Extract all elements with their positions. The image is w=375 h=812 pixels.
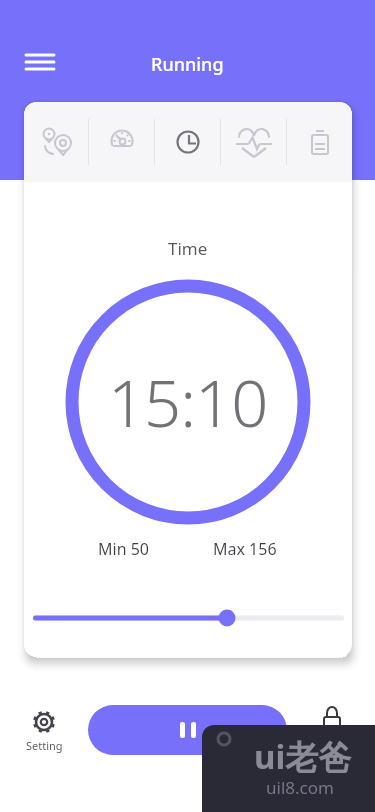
staticText: uil8.com (266, 776, 334, 799)
staticText: Max 156 (213, 538, 277, 560)
button[interactable] (319, 703, 345, 733)
button[interactable] (89, 102, 154, 182)
staticText: 15:10 (108, 358, 268, 447)
button[interactable] (155, 102, 220, 182)
button[interactable]: Setting (20, 705, 68, 761)
button[interactable] (24, 102, 88, 182)
button[interactable] (88, 705, 287, 755)
staticText: Setting (26, 738, 63, 753)
button[interactable] (287, 102, 352, 182)
staticText: Time (168, 237, 208, 260)
button[interactable] (221, 102, 286, 182)
staticText: Min 50 (98, 538, 149, 560)
staticText: Running (151, 52, 224, 77)
button[interactable] (20, 48, 60, 78)
staticText: ui老爸 (254, 734, 352, 779)
